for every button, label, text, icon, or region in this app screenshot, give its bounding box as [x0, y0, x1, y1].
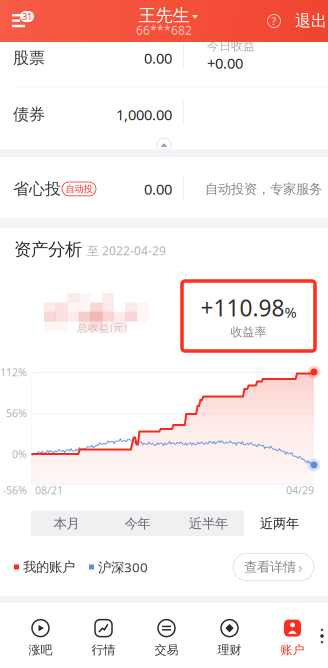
button[interactable]: 查看详情: [233, 553, 314, 581]
staticText: 1,000.00: [116, 105, 172, 124]
staticText: 自动投资，专家服务: [205, 181, 322, 197]
staticText: ›: [298, 557, 303, 577]
staticText: %: [284, 302, 296, 322]
staticText: 近半年: [189, 515, 228, 532]
staticText: 04/29: [286, 483, 314, 497]
staticText: 收益率: [230, 325, 266, 339]
staticText: 0%: [12, 447, 27, 461]
staticText: 退出: [295, 11, 327, 31]
button[interactable]: 股票: [0, 37, 328, 79]
staticText: 理财: [217, 643, 241, 657]
button[interactable]: 菜单: [12, 0, 52, 42]
staticText: 0.00: [144, 179, 172, 199]
staticText: 查看详情: [244, 559, 296, 575]
staticText: 66***682: [136, 22, 192, 38]
staticText: 沪深300: [98, 558, 148, 576]
staticText: +0.00: [207, 53, 243, 73]
staticText: 账户: [280, 643, 304, 657]
button[interactable]: 王先生: [116, 2, 226, 40]
staticText: 56%: [6, 406, 27, 420]
staticText: 本月: [53, 515, 79, 532]
button[interactable]: 交易: [135, 615, 198, 661]
staticText: 至 2022-04-29: [87, 243, 166, 258]
staticText: 债券: [13, 105, 45, 124]
button[interactable]: 本月: [31, 511, 102, 536]
staticText: 0.00: [144, 48, 172, 68]
staticText: -56%: [3, 483, 27, 497]
staticText: 今日收益: [207, 39, 255, 53]
button[interactable]: 今年: [102, 511, 173, 536]
button[interactable]: 收起: [152, 133, 176, 157]
button[interactable]: 退出: [294, 8, 328, 34]
button[interactable]: 近半年: [173, 511, 244, 536]
button[interactable]: 帮助: [261, 8, 287, 34]
button[interactable]: 省心投: [0, 168, 328, 210]
button[interactable]: 涨吧: [9, 615, 72, 661]
staticText: 资产分析: [14, 239, 82, 260]
staticText: 08/21: [35, 483, 63, 497]
staticText: 省心投: [13, 179, 61, 199]
staticText: 近两年: [260, 515, 299, 532]
staticText: 我的账户: [23, 559, 75, 575]
button[interactable]: 债券: [0, 93, 328, 135]
button[interactable]: 账户: [261, 615, 324, 661]
staticText: 王先生: [138, 5, 189, 26]
staticText: 总收益(元): [77, 320, 127, 335]
button[interactable]: 理财: [198, 615, 261, 661]
button[interactable]: 近两年: [244, 511, 315, 536]
staticText: 今年: [124, 515, 150, 532]
button[interactable]: 行情: [72, 615, 135, 661]
staticText: 涨吧: [28, 643, 52, 657]
staticText: ?: [271, 14, 276, 28]
staticText: 自动投: [65, 183, 92, 195]
staticText: 31: [22, 10, 32, 23]
staticText: +110.98: [200, 293, 284, 323]
staticText: 交易: [154, 643, 178, 657]
staticText: 股票: [13, 48, 45, 68]
staticText: 112%: [0, 365, 27, 379]
staticText: 行情: [91, 643, 115, 657]
